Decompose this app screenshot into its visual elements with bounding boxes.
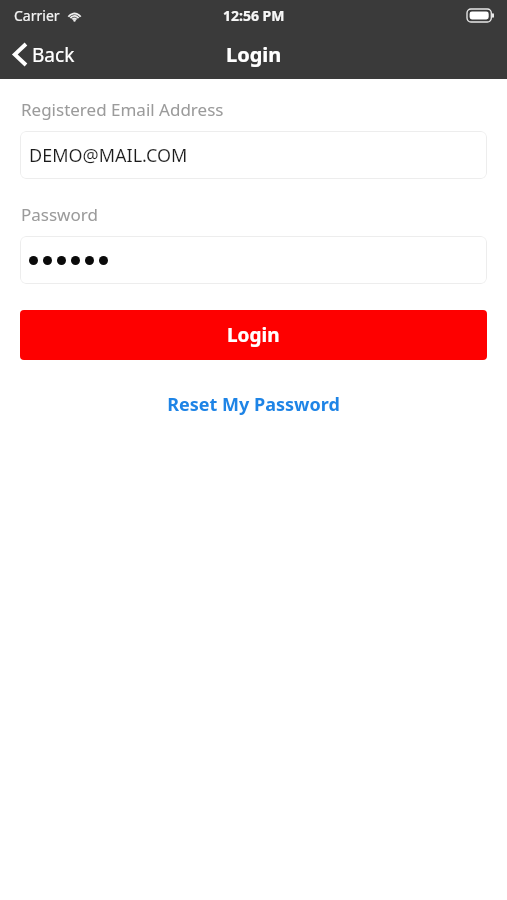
button[interactable]: Reset My Password (151, 386, 356, 423)
button[interactable] (20, 236, 487, 284)
staticText: Login (226, 41, 282, 68)
staticText: Carrier (14, 6, 60, 25)
staticText: Reset My Password (167, 392, 340, 417)
staticText: 12:56 PM (223, 6, 285, 25)
button[interactable]: DEMO@MAIL.COM (20, 131, 487, 179)
staticText: Back (32, 42, 75, 68)
staticText: Registered Email Address (21, 98, 224, 121)
staticText: DEMO@MAIL.COM (29, 143, 188, 168)
button[interactable]: Back (0, 30, 87, 79)
button[interactable]: Login (20, 310, 487, 360)
staticText: Login (227, 322, 280, 348)
staticText: Password (21, 203, 98, 226)
